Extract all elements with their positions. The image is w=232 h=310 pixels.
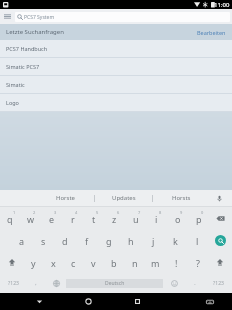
button[interactable]: ?123 <box>0 273 26 293</box>
staticText: Simatic <box>6 81 25 88</box>
staticText: Horsts <box>172 194 191 202</box>
staticText: p <box>196 213 202 225</box>
button[interactable]: y <box>23 251 43 273</box>
staticText: PCS7 System <box>24 14 55 21</box>
button[interactable]: a <box>11 229 32 251</box>
staticText: 4 <box>75 210 78 215</box>
button[interactable]: Shift <box>0 251 23 273</box>
staticText: d <box>62 235 68 247</box>
button[interactable]: 1 <box>0 207 20 229</box>
button[interactable]: Delete <box>209 207 232 229</box>
staticText: , <box>35 280 37 287</box>
button[interactable]: g <box>98 229 120 251</box>
button[interactable]: n <box>124 251 145 273</box>
button[interactable]: 0 <box>188 207 209 229</box>
button[interactable]: ?123 <box>205 273 232 293</box>
button[interactable]: m <box>145 251 166 273</box>
button[interactable]: ! <box>166 251 187 273</box>
button[interactable]: k <box>164 229 186 251</box>
staticText: 8 <box>159 210 162 215</box>
button[interactable]: Emoji <box>163 273 185 293</box>
button[interactable]: Simatic PCS7 <box>0 58 232 75</box>
staticText: w <box>27 213 35 225</box>
button[interactable]: d <box>54 229 76 251</box>
button[interactable]: Horsts <box>153 190 210 206</box>
button[interactable]: Menu <box>0 9 15 24</box>
button[interactable]: b <box>103 251 124 273</box>
staticText: e <box>49 213 55 225</box>
staticText: g <box>106 235 112 247</box>
staticText: ?123 <box>8 280 19 287</box>
staticText: k <box>173 235 178 247</box>
button[interactable]: 7 <box>125 207 146 229</box>
button[interactable]: 6 <box>104 207 125 229</box>
staticText: Updates <box>112 194 136 202</box>
button[interactable]: v <box>83 251 103 273</box>
staticText: 3 <box>54 210 57 215</box>
button[interactable]: c <box>63 251 83 273</box>
button[interactable]: x <box>43 251 63 273</box>
staticText: Simatic PCS7 <box>6 63 40 70</box>
staticText: t <box>92 213 96 225</box>
button[interactable]: s <box>32 229 54 251</box>
button[interactable]: Bearbeiten <box>191 26 232 39</box>
button[interactable]: Voice input <box>210 190 228 206</box>
button[interactable]: 4 <box>62 207 83 229</box>
button[interactable]: Switch keyboard <box>193 293 227 310</box>
button[interactable]: Logo <box>0 94 232 111</box>
staticText: 7 <box>138 210 141 215</box>
staticText: a <box>19 235 25 247</box>
button[interactable]: 9 <box>167 207 188 229</box>
staticText: Letzte Suchanfragen <box>6 28 64 36</box>
staticText: i <box>155 213 158 225</box>
button[interactable]: f <box>76 229 98 251</box>
button[interactable]: Shift <box>208 251 232 273</box>
button[interactable]: Change language <box>46 273 66 293</box>
staticText: Deutsch <box>105 280 125 287</box>
staticText: u <box>133 213 139 225</box>
staticText: y <box>31 257 36 269</box>
button[interactable]: 3 <box>41 207 62 229</box>
staticText: r <box>71 213 75 225</box>
button[interactable]: PCS7 System <box>15 12 230 22</box>
button[interactable]: Deutsch <box>66 279 163 288</box>
button[interactable]: 2 <box>20 207 41 229</box>
staticText: 11:00 <box>214 1 230 9</box>
staticText: b <box>111 257 117 269</box>
button[interactable]: ? <box>187 251 208 273</box>
staticText: x <box>51 257 56 269</box>
staticText: o <box>175 213 181 225</box>
staticText: 6 <box>117 210 120 215</box>
button[interactable]: 8 <box>146 207 167 229</box>
button[interactable]: Updates <box>95 190 152 206</box>
staticText: l <box>196 235 199 247</box>
staticText: Logo <box>6 99 19 106</box>
staticText: 1 <box>13 210 16 215</box>
staticText: z <box>112 213 117 225</box>
staticText: . <box>194 280 196 287</box>
button[interactable]: Horste <box>36 190 94 206</box>
staticText: v <box>91 257 96 269</box>
staticText: c <box>71 257 76 269</box>
button[interactable]: Home <box>71 293 105 310</box>
button[interactable]: PCS7 Handbuch <box>0 40 232 57</box>
button[interactable]: 5 <box>83 207 104 229</box>
staticText: 2 <box>33 210 36 215</box>
staticText: ! <box>175 257 178 269</box>
staticText: 9 <box>180 210 183 215</box>
button[interactable]: h <box>120 229 142 251</box>
button[interactable]: j <box>142 229 164 251</box>
staticText: Horste <box>56 194 75 202</box>
staticText: h <box>128 235 134 247</box>
staticText: n <box>132 257 138 269</box>
button[interactable]: Search <box>208 229 232 251</box>
staticText: q <box>7 213 13 225</box>
staticText: f <box>85 235 89 247</box>
button[interactable]: Simatic <box>0 76 232 93</box>
staticText: j <box>152 235 155 247</box>
button[interactable]: Recents <box>120 293 154 310</box>
button[interactable]: Back <box>23 293 56 310</box>
button[interactable]: l <box>186 229 208 251</box>
